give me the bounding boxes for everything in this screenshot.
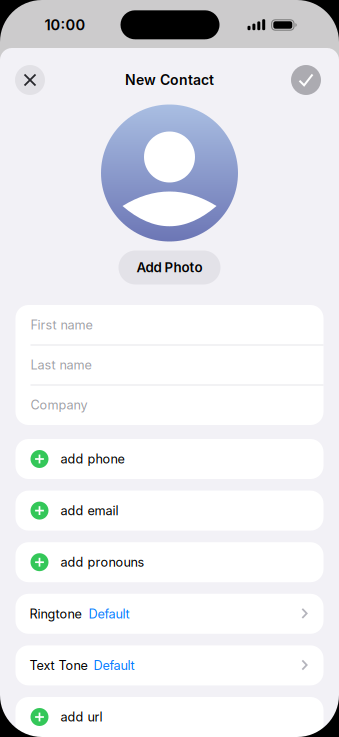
button[interactable]: Company <box>15 385 323 425</box>
staticText: Last name <box>30 357 91 373</box>
staticText: add url <box>60 709 102 725</box>
button[interactable]: add phone <box>15 439 323 479</box>
staticText: Default <box>88 606 129 621</box>
staticText: Text Tone <box>29 658 87 673</box>
staticText: add phone <box>60 451 124 467</box>
staticText: New Contact <box>125 71 214 88</box>
staticText: 10:00 <box>44 16 85 34</box>
button[interactable]: Add Photo <box>118 250 220 284</box>
staticText: Company <box>30 397 87 413</box>
button[interactable]: Done <box>291 65 321 95</box>
staticText: Add Photo <box>136 259 202 275</box>
staticText: add email <box>60 503 118 518</box>
button[interactable]: Ringtone <box>15 594 323 634</box>
button[interactable]: First name <box>15 305 323 345</box>
staticText: First name <box>30 317 92 333</box>
staticText: add pronouns <box>60 554 144 570</box>
staticText: Default <box>93 658 134 673</box>
staticText: Ringtone <box>29 606 81 621</box>
button[interactable]: add email <box>15 491 323 531</box>
button[interactable]: add pronouns <box>15 542 323 582</box>
button[interactable]: Text Tone <box>15 645 323 685</box>
button[interactable]: Cancel <box>15 65 45 95</box>
button[interactable]: Last name <box>15 345 323 385</box>
button[interactable]: add url <box>15 697 323 737</box>
